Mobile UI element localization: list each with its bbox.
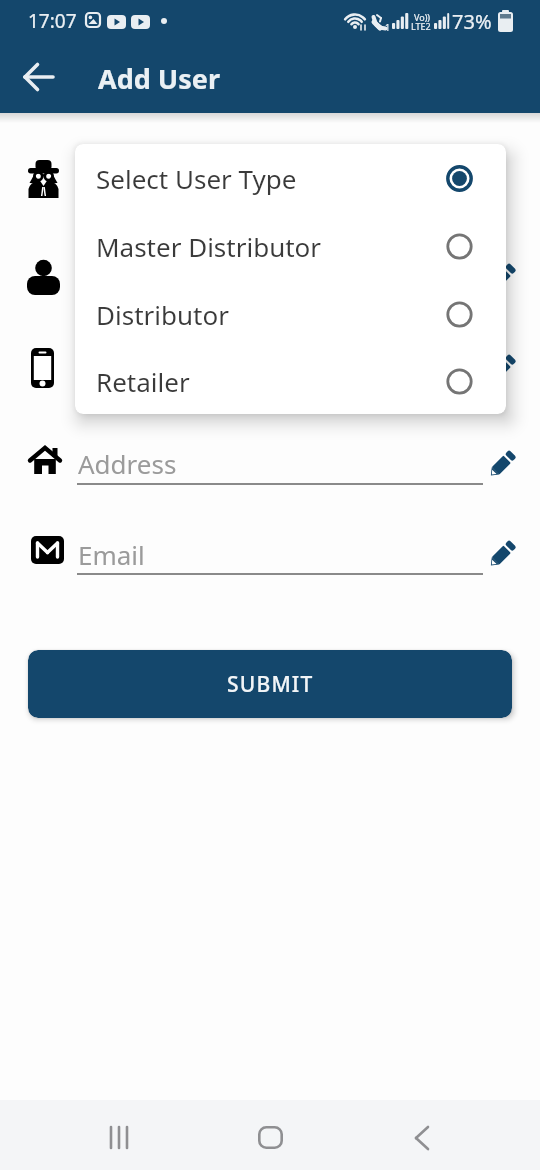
button[interactable]: Distributor xyxy=(75,280,506,348)
button[interactable] xyxy=(22,62,58,92)
staticText: LTE2 xyxy=(411,20,431,32)
staticText: 73% xyxy=(452,8,492,35)
staticText: SUBMIT xyxy=(227,670,314,699)
staticText: 1 xyxy=(385,21,391,33)
staticText: Vo)) xyxy=(414,11,431,23)
staticText: Email xyxy=(78,537,145,572)
staticText: 17:07 xyxy=(28,8,77,34)
staticText: Master Distributor xyxy=(96,229,322,264)
button[interactable] xyxy=(258,1126,283,1149)
staticText: Select User Type xyxy=(96,161,297,196)
button[interactable] xyxy=(414,1127,430,1149)
staticText: Address xyxy=(78,446,177,481)
button[interactable]: Select User Type xyxy=(75,144,506,212)
button[interactable]: SUBMIT xyxy=(28,650,512,718)
staticText: Add User xyxy=(98,60,220,97)
button[interactable] xyxy=(109,1127,131,1149)
staticText: Distributor xyxy=(96,297,229,332)
button[interactable]: Retailer xyxy=(75,348,506,414)
button[interactable]: Master Distributor xyxy=(75,212,506,280)
staticText: Retailer xyxy=(96,364,190,399)
